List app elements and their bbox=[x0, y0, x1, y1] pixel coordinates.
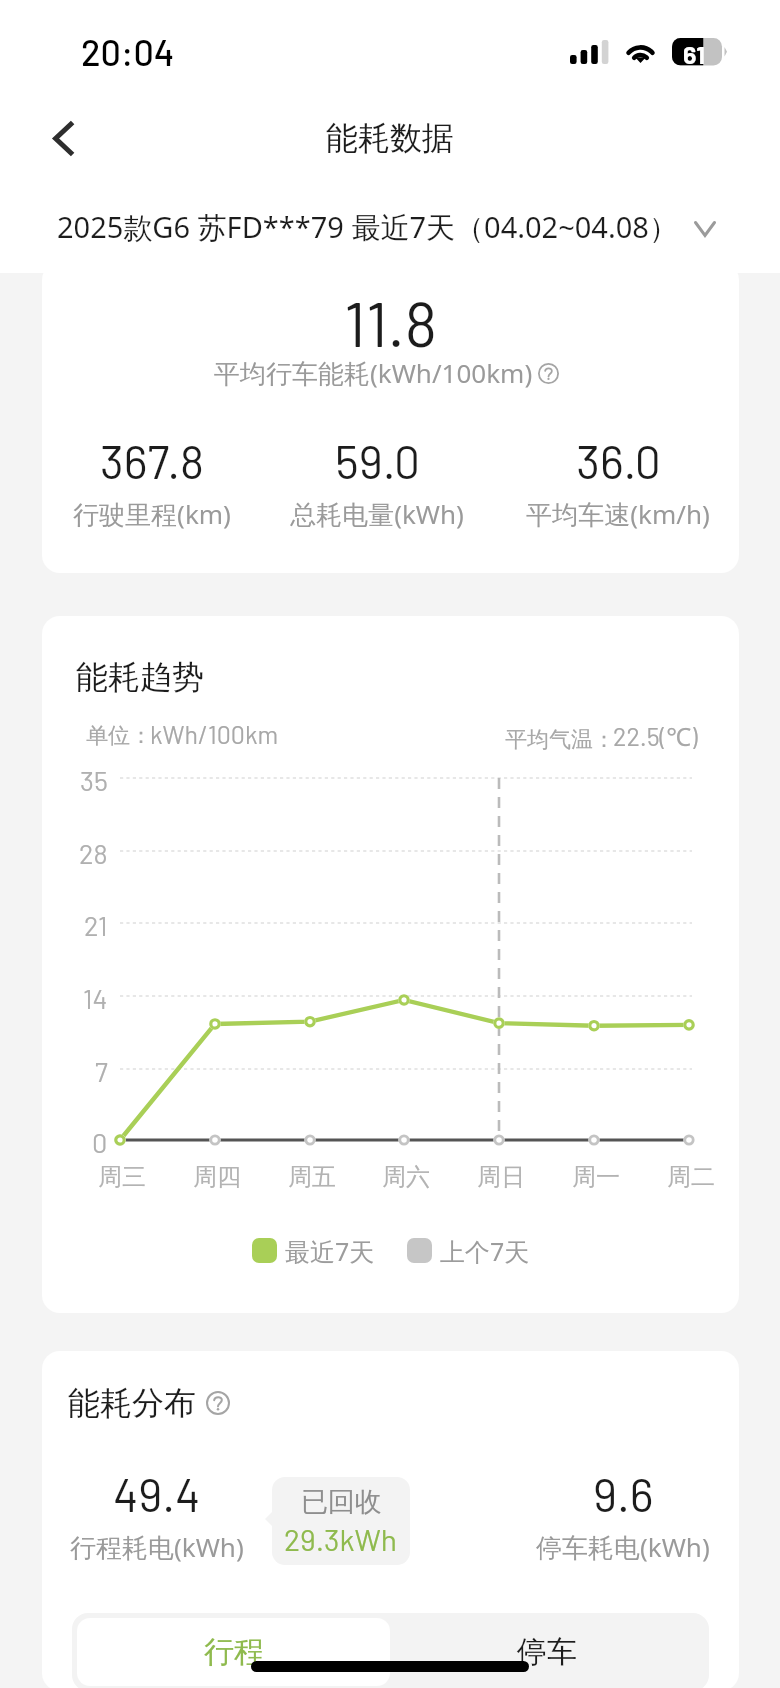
staticText: 周一 bbox=[572, 1162, 620, 1192]
staticText: 21 bbox=[84, 909, 108, 941]
staticText: 行程 bbox=[204, 1633, 264, 1671]
staticText: 2025款G6 苏FD***79 最近7天（04.02~04.08） bbox=[57, 207, 678, 247]
staticText: kWh/100km bbox=[150, 719, 279, 749]
staticText: 最近7天 bbox=[285, 1234, 375, 1268]
staticText: 周日 bbox=[477, 1162, 525, 1192]
staticText: 能耗数据 bbox=[326, 118, 454, 158]
staticText: 9.6 bbox=[593, 1466, 654, 1521]
staticText: 周四 bbox=[193, 1162, 241, 1192]
staticText: 周六 bbox=[382, 1162, 430, 1192]
staticText: 上个7天 bbox=[440, 1234, 530, 1268]
staticText: 已回收 bbox=[301, 1485, 382, 1519]
staticText: 平均车速(km/h) bbox=[526, 496, 710, 532]
button[interactable]: 2025款G6 苏FD***79 最近7天（04.02~04.08） bbox=[0, 196, 780, 258]
button[interactable]: 停车 bbox=[390, 1618, 704, 1686]
staticText: 周三 bbox=[98, 1162, 146, 1192]
button[interactable]: Back bbox=[24, 100, 100, 176]
staticText: 周五 bbox=[288, 1162, 336, 1192]
staticText: 平均气温： bbox=[505, 726, 615, 754]
button[interactable]: 行程 bbox=[77, 1618, 390, 1686]
staticText: 22.5(℃) bbox=[613, 719, 698, 753]
staticText: 平均行车能耗(kWh/100km) bbox=[214, 355, 533, 391]
staticText: 行程耗电(kWh) bbox=[70, 1529, 244, 1565]
staticText: 7 bbox=[95, 1055, 108, 1087]
button[interactable]: 最近7天 bbox=[252, 1238, 375, 1272]
staticText: 周二 bbox=[667, 1162, 715, 1192]
staticText: 29.3kWh bbox=[284, 1521, 398, 1557]
staticText: 20:04 bbox=[81, 30, 175, 73]
staticText: 停车耗电(kWh) bbox=[536, 1529, 710, 1565]
staticText: 28 bbox=[79, 837, 108, 869]
staticText: 11.8 bbox=[344, 285, 438, 359]
staticText: 36.0 bbox=[576, 433, 661, 488]
staticText: 35 bbox=[80, 764, 108, 796]
staticText: 49.4 bbox=[113, 1466, 201, 1521]
staticText: 61 bbox=[683, 39, 706, 67]
staticText: 行驶里程(km) bbox=[73, 496, 231, 532]
staticText: 单位： bbox=[86, 722, 152, 750]
staticText: 能耗分布 bbox=[68, 1383, 196, 1423]
staticText: 14 bbox=[83, 982, 108, 1014]
staticText: 0 bbox=[92, 1126, 108, 1158]
staticText: 59.0 bbox=[335, 433, 420, 488]
staticText: 停车 bbox=[517, 1633, 577, 1671]
staticText: 367.8 bbox=[100, 433, 204, 488]
staticText: 总耗电量(kWh) bbox=[290, 496, 464, 532]
button[interactable]: 上个7天 bbox=[407, 1238, 530, 1272]
staticText: 能耗趋势 bbox=[76, 657, 204, 697]
